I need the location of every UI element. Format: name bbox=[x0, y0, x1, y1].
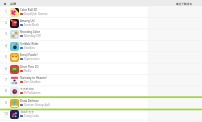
staticText: Voodoo bbox=[24, 46, 35, 50]
staticText: InnerSloth bbox=[24, 23, 39, 27]
button[interactable]: 最近下载排名 bbox=[176, 0, 193, 7]
staticText: 品牌 bbox=[10, 2, 16, 6]
staticText: Good Job Games bbox=[24, 12, 48, 16]
staticText: 2 bbox=[5, 20, 7, 24]
staticText: 3 bbox=[5, 31, 7, 35]
button[interactable]: 5 bbox=[0, 52, 202, 63]
staticText: 4 bbox=[5, 43, 7, 47]
staticText: Among Us! bbox=[20, 19, 35, 23]
button[interactable]: 2 bbox=[0, 18, 202, 29]
staticText: Supersonic bbox=[24, 57, 40, 61]
button[interactable]: 4 bbox=[0, 41, 202, 52]
staticText: Zen Studios bbox=[24, 80, 41, 84]
staticText: 1 bbox=[5, 9, 7, 13]
staticText: Emoji Puzzle! bbox=[20, 53, 38, 57]
staticText: Shooting Color bbox=[20, 30, 40, 34]
button[interactable]: 6 bbox=[0, 64, 202, 75]
button[interactable]: Sort bbox=[0, 0, 202, 7]
staticText: Crazy Labs bbox=[24, 114, 40, 118]
staticText: 消消乐天天 bbox=[20, 110, 34, 114]
staticText: Color Roll 3D bbox=[20, 8, 38, 12]
staticText: Monday Off bbox=[24, 34, 41, 38]
staticText: Draw Defence bbox=[20, 99, 39, 103]
staticText: Rollic bbox=[24, 69, 32, 73]
staticText: 10 bbox=[4, 111, 8, 115]
staticText: 5 bbox=[5, 54, 7, 58]
button[interactable]: 10 bbox=[0, 109, 202, 120]
staticText: 天天爱消除 bbox=[20, 87, 34, 91]
button[interactable]: 1 bbox=[0, 7, 202, 18]
button[interactable]: 3 bbox=[0, 29, 202, 40]
staticText: Gamee Group ApS bbox=[24, 103, 50, 107]
staticText: 9 bbox=[5, 100, 7, 104]
button[interactable]: 7 bbox=[0, 75, 202, 86]
staticText: 6 bbox=[5, 66, 7, 70]
staticText: Drive Thru 3D bbox=[20, 65, 39, 69]
staticText: Stairway to Heaven ! bbox=[20, 76, 48, 80]
staticText: 最近下载排名 bbox=[176, 2, 193, 5]
staticText: 8 bbox=[5, 88, 7, 92]
button[interactable]: 9 bbox=[0, 98, 202, 109]
staticText: 7 bbox=[5, 77, 7, 81]
button[interactable]: 8 bbox=[0, 86, 202, 97]
staticText: YoYoGames bbox=[24, 91, 41, 95]
staticText: Scribble Rider bbox=[20, 42, 39, 46]
